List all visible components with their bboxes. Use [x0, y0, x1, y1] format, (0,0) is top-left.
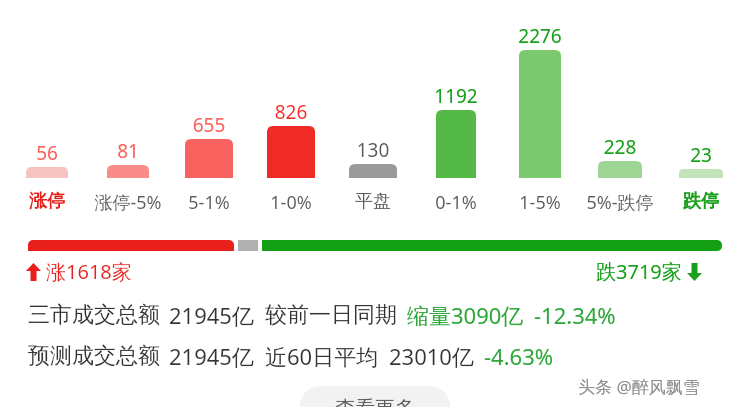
button[interactable]: Rising: [26, 258, 132, 285]
staticText: 缩量3090亿: [407, 300, 524, 330]
button[interactable]: 5-1%: [154, 190, 264, 215]
staticText: 近60日平均: [265, 341, 379, 371]
staticText: 5%-跌停: [565, 190, 675, 215]
staticText: 655: [169, 112, 249, 138]
staticText: 涨停: [0, 190, 102, 213]
staticText: 平盘: [318, 190, 428, 213]
staticText: 三市成交总额: [28, 301, 160, 329]
staticText: 21945亿: [169, 300, 254, 330]
button[interactable]: 涨停-5%: [73, 190, 183, 215]
staticText: 查看更多: [335, 396, 415, 407]
staticText: 头条 @醉风飘雪: [578, 375, 700, 398]
staticText: 81: [88, 138, 168, 164]
staticText: 130: [333, 137, 413, 163]
button[interactable]: 1-0%: [236, 190, 346, 215]
staticText: 23010亿: [389, 341, 474, 371]
staticText: 涨停-5%: [73, 190, 183, 215]
staticText: 5-1%: [154, 190, 264, 215]
staticText: 23: [661, 142, 741, 168]
button[interactable]: 平盘: [318, 190, 428, 213]
button[interactable]: 0-1%: [401, 190, 511, 215]
staticText: -4.63%: [484, 341, 554, 371]
staticText: 涨1618家: [46, 258, 132, 285]
button[interactable]: 涨停: [0, 190, 102, 213]
staticText: 1192: [416, 83, 496, 109]
button[interactable]: 跌3719家: [596, 258, 702, 285]
other: Falling: [687, 263, 702, 281]
button[interactable]: 查看更多: [300, 386, 450, 407]
staticText: 跌3719家: [596, 258, 682, 285]
button[interactable]: 跌停: [646, 190, 750, 213]
staticText: 0-1%: [401, 190, 511, 215]
staticText: 228: [580, 134, 660, 160]
staticText: 1-5%: [485, 190, 595, 215]
staticText: -12.34%: [534, 300, 616, 330]
staticText: 预测成交总额: [28, 342, 160, 370]
staticText: 跌停: [646, 190, 750, 213]
button[interactable]: 1-5%: [485, 190, 595, 215]
staticText: 1-0%: [236, 190, 346, 215]
button[interactable]: 5%-跌停: [565, 190, 675, 215]
staticText: 56: [7, 140, 87, 166]
other: Rising: [26, 263, 41, 281]
staticText: 21945亿: [169, 341, 254, 371]
staticText: 较前一日同期: [265, 301, 397, 329]
staticText: 2276: [500, 23, 580, 49]
staticText: 826: [251, 99, 331, 125]
